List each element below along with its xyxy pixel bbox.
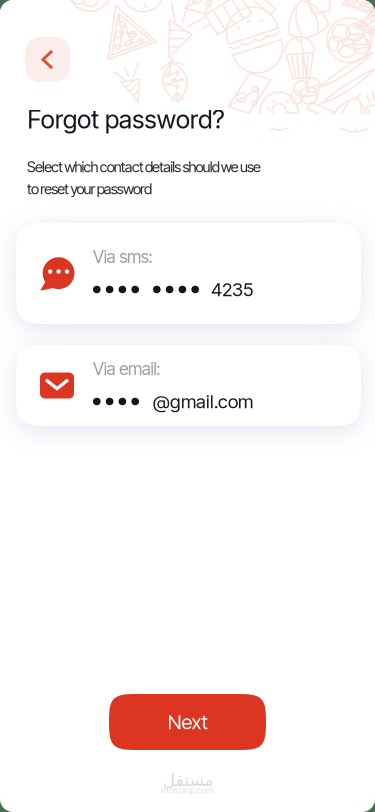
button[interactable]: Via sms: — [16, 223, 361, 324]
staticText: مستقل — [162, 770, 213, 790]
staticText: Via sms: — [93, 246, 153, 267]
staticText: Select which contact details should we u… — [27, 158, 261, 176]
button[interactable]: Next — [109, 694, 266, 750]
button[interactable]: Back — [25, 37, 70, 82]
staticText: Forgot password? — [27, 104, 225, 135]
staticText: mostaql.com — [161, 785, 214, 795]
button[interactable]: Via email: — [16, 345, 361, 426]
staticText: to reset your password — [27, 180, 152, 198]
staticText: @gmail.com — [153, 390, 253, 413]
staticText: 4235 — [211, 278, 253, 301]
staticText: Next — [167, 710, 207, 734]
staticText: Via email: — [93, 358, 160, 379]
